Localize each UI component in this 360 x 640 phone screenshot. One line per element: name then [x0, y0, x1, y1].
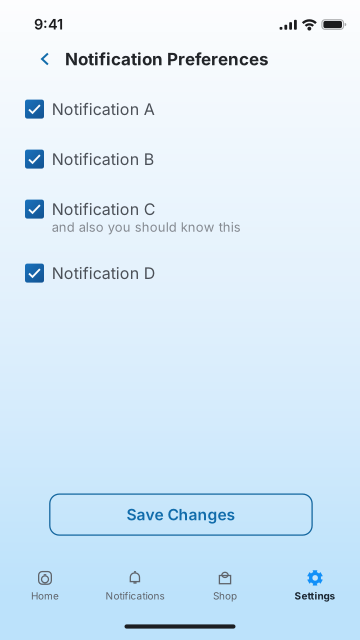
button[interactable]: Settings — [270, 570, 360, 602]
staticText: Shop — [213, 590, 237, 602]
button[interactable]: Notification D — [0, 264, 360, 283]
staticText: Notification B — [52, 149, 154, 169]
button[interactable]: Notifications — [90, 570, 180, 602]
button[interactable]: Shop — [180, 570, 270, 602]
staticText: Save Changes — [126, 505, 235, 524]
staticText: Settings — [294, 590, 335, 602]
staticText: and also you should know this — [52, 219, 241, 235]
staticText: Notification C — [52, 199, 156, 219]
staticText: Home — [31, 590, 59, 602]
button[interactable]: Notification C — [0, 200, 360, 236]
staticText: Notifications — [105, 590, 164, 602]
staticText: Notification Preferences — [65, 49, 269, 69]
button[interactable]: Home — [0, 570, 90, 602]
button[interactable]: Back — [33, 44, 57, 74]
button[interactable]: Notification B — [0, 150, 360, 169]
button[interactable]: Notification A — [0, 100, 360, 119]
staticText: Notification D — [52, 263, 156, 283]
button[interactable]: Save Changes — [50, 494, 312, 535]
staticText: 9:41 — [34, 15, 63, 33]
staticText: Notification A — [52, 99, 155, 119]
